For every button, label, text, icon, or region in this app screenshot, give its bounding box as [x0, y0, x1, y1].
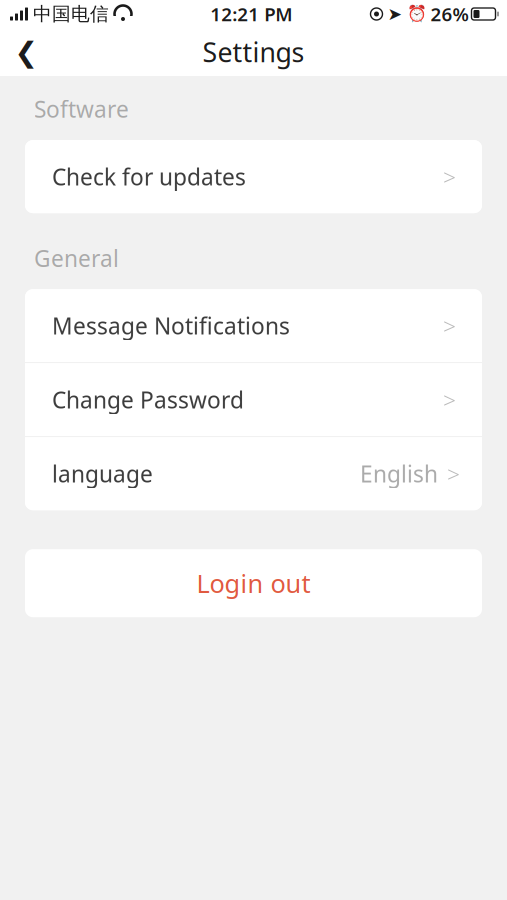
staticText: Settings [202, 34, 304, 70]
button[interactable]: Check for updates [25, 140, 482, 213]
staticText: > [447, 459, 460, 489]
button[interactable]: language [25, 437, 482, 510]
staticText: 12:21 PM [210, 2, 292, 26]
button[interactable]: Change Password [25, 363, 482, 436]
staticText: ❮ [14, 36, 37, 68]
staticText: ➤ [387, 4, 402, 24]
staticText: 中国电信 [33, 2, 109, 25]
button[interactable]: Back [0, 28, 52, 76]
staticText: Software [34, 94, 129, 124]
staticText: > [443, 311, 456, 341]
staticText: Login out [196, 566, 310, 600]
staticText: language [52, 459, 153, 489]
staticText: English [360, 459, 438, 489]
staticText: Check for updates [52, 162, 246, 192]
staticText: > [443, 385, 456, 415]
staticText: 26% [430, 2, 468, 26]
staticText: > [443, 162, 456, 192]
staticText: ⏰ [406, 5, 426, 23]
staticText: General [34, 243, 119, 273]
staticText: Change Password [52, 385, 244, 415]
button[interactable]: Message Notifications [25, 289, 482, 362]
staticText: Message Notifications [52, 311, 290, 341]
button[interactable]: Login out [25, 549, 482, 617]
